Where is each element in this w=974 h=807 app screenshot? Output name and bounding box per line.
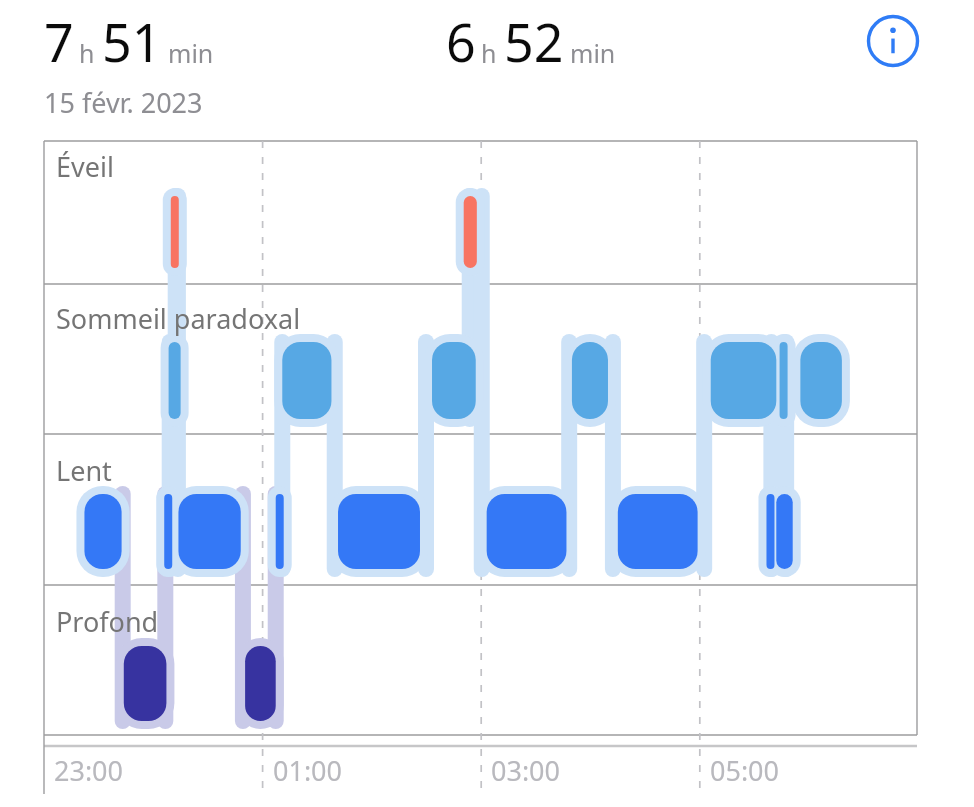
staticText: 23:00 xyxy=(54,752,124,789)
staticText: Lent xyxy=(56,452,112,489)
staticText: Profond xyxy=(56,603,159,640)
button[interactable]: Informations xyxy=(866,14,920,68)
staticText: 52 xyxy=(504,6,564,77)
staticText: 7 xyxy=(44,6,74,77)
staticText: h xyxy=(79,36,95,70)
staticText: 05:00 xyxy=(710,752,780,789)
staticText: 51 xyxy=(102,6,162,77)
staticText: min xyxy=(168,36,214,70)
staticText: 03:00 xyxy=(491,752,561,789)
staticText: 01:00 xyxy=(273,752,343,789)
staticText: Sommeil paradoxal xyxy=(56,300,301,337)
staticText: 15 févr. 2023 xyxy=(44,84,203,121)
staticText: h xyxy=(481,36,497,70)
staticText: 6 xyxy=(446,6,476,77)
staticText: Éveil xyxy=(56,148,114,185)
staticText: min xyxy=(570,36,616,70)
